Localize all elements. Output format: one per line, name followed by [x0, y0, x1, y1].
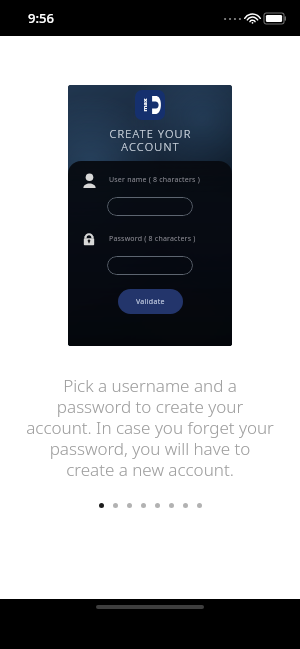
staticText: Pick a username and a password to create…	[25, 374, 275, 481]
staticText: User name ( 8 characters )	[109, 175, 200, 185]
button[interactable]: Validate	[118, 289, 183, 314]
button[interactable]: Page 1	[99, 503, 104, 508]
button[interactable]: Page 8	[197, 503, 202, 508]
staticText: max	[140, 98, 148, 111]
button[interactable]: Page 2	[113, 503, 118, 508]
button[interactable]: Page 3	[127, 503, 132, 508]
button[interactable]: Page 6	[169, 503, 174, 508]
button[interactable]: Page 4	[141, 503, 146, 508]
staticText: 9:56	[28, 9, 54, 27]
button[interactable]	[107, 256, 193, 275]
button[interactable]	[107, 197, 193, 216]
staticText: Validate	[136, 297, 165, 307]
staticText: CREATE YOUR ACCOUNT	[109, 126, 192, 154]
button[interactable]: Page 7	[183, 503, 188, 508]
staticText: Password ( 8 characters )	[109, 234, 196, 244]
button[interactable]: Page 5	[155, 503, 160, 508]
